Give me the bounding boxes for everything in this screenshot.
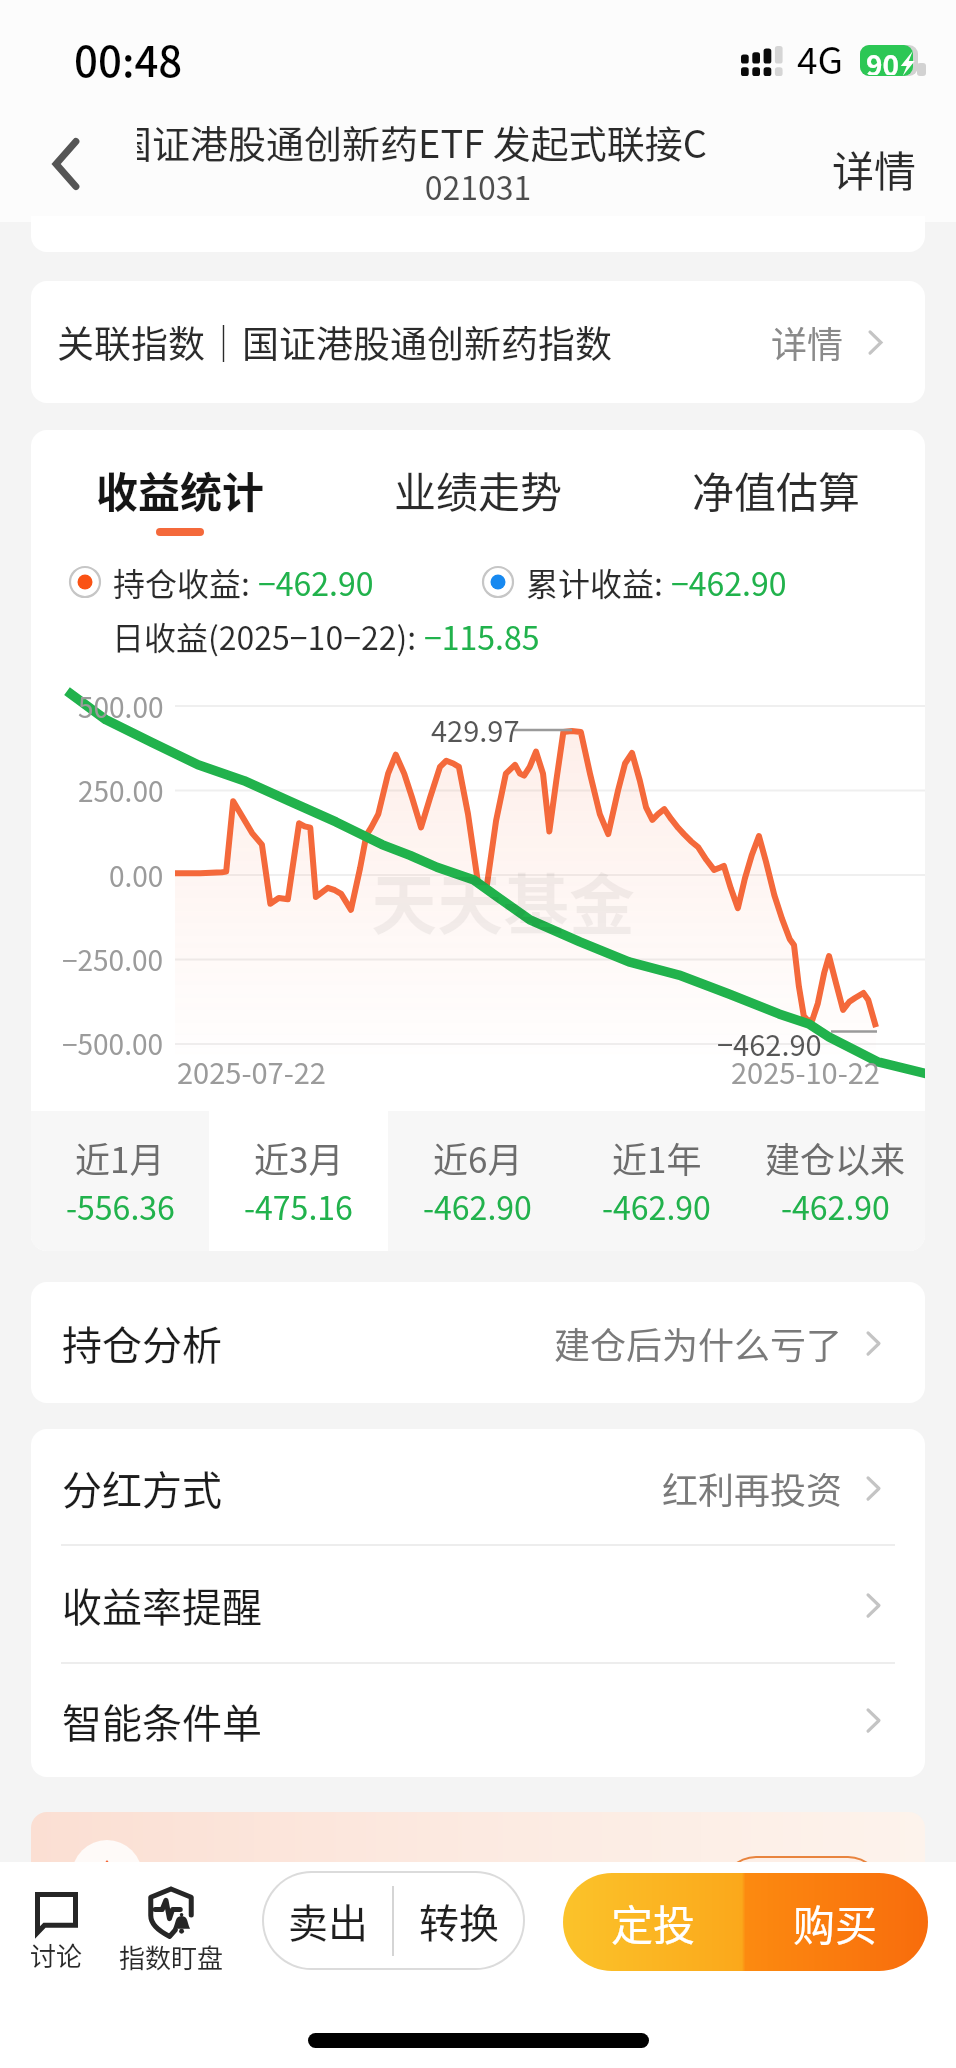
staticText: 国证港股通创新药ETF 发起式联接C	[137, 118, 707, 164]
staticText: 持仓收益:	[113, 559, 258, 605]
staticText: 智能条件单	[62, 1692, 262, 1750]
staticText: -462.90	[423, 1183, 532, 1229]
button[interactable]: 卖出	[264, 1873, 392, 1968]
button[interactable]: 详情	[818, 126, 931, 211]
button[interactable]: Back	[36, 134, 96, 194]
staticText: −462.90	[671, 559, 787, 605]
button[interactable]: 业绩走势	[329, 459, 627, 528]
staticText: 近6月	[433, 1132, 523, 1183]
staticText: 购买	[793, 1892, 878, 1953]
staticText: 0.00	[109, 855, 164, 895]
staticText: 近1年	[612, 1132, 702, 1183]
staticText: 累计收益:	[526, 559, 671, 605]
button[interactable]: 收益率提醒	[31, 1546, 925, 1664]
staticText: 详情	[832, 138, 917, 199]
staticText: −500.00	[62, 1023, 164, 1063]
staticText: 近1月	[75, 1132, 165, 1183]
button[interactable]: 分红方式	[31, 1429, 925, 1546]
staticText: 250.00	[78, 770, 164, 810]
button[interactable]: 转换	[394, 1873, 523, 1968]
button[interactable]: 近3月	[209, 1111, 388, 1251]
staticText: 卖出	[288, 1892, 368, 1950]
button[interactable]	[31, 1812, 925, 1982]
staticText: 2025-10-22	[731, 1050, 880, 1092]
staticText: 红利再投资	[662, 1462, 843, 1514]
staticText: 2025-07-22	[177, 1050, 326, 1092]
staticText: 持仓分析	[62, 1314, 222, 1372]
button[interactable]: 关联指数｜国证港股通创新药指数	[31, 281, 925, 403]
staticText: 定投	[611, 1892, 696, 1953]
staticText: -475.16	[244, 1183, 353, 1229]
staticText: −115.85	[424, 613, 540, 659]
button[interactable]: 建仓以来	[746, 1111, 925, 1251]
staticText: 讨论	[30, 1936, 83, 1974]
staticText: 详情	[771, 316, 844, 368]
button[interactable]: 智能条件单	[31, 1664, 925, 1777]
staticText: 建仓以来	[765, 1132, 906, 1183]
staticText: 关联指数｜国证港股通创新药指数	[57, 315, 612, 369]
staticText: 日收益(2025−10−22):	[112, 613, 424, 659]
staticText: 转换	[419, 1892, 499, 1950]
button[interactable]: 购买	[743, 1873, 928, 1971]
staticText: -462.90	[602, 1183, 711, 1229]
staticText: 指数盯盘	[119, 1938, 224, 1976]
staticText: −250.00	[62, 939, 164, 979]
button[interactable]: 指数盯盘	[112, 1887, 230, 1976]
staticText: 500.00	[78, 686, 164, 726]
button[interactable]: 持仓分析	[31, 1282, 925, 1403]
staticText: −462.90	[717, 1022, 822, 1064]
staticText: 4G	[797, 31, 844, 85]
button[interactable]: 近1年	[567, 1111, 746, 1251]
staticText: 建仓后为什么亏了	[554, 1317, 843, 1369]
button[interactable]: 近1月	[31, 1111, 209, 1251]
button[interactable]: 定投	[563, 1873, 743, 1971]
staticText: -556.36	[66, 1183, 175, 1229]
staticText: 天天基金	[371, 852, 635, 948]
staticText: 收益率提醒	[62, 1576, 262, 1634]
staticText: 90	[866, 44, 900, 75]
button[interactable]: 净值估算	[627, 459, 925, 528]
button[interactable]: 讨论	[10, 1892, 102, 1974]
button[interactable]: 收益统计	[31, 459, 329, 536]
staticText: 业绩走势	[394, 459, 563, 520]
staticText: −462.90	[258, 559, 374, 605]
staticText: -462.90	[781, 1183, 890, 1229]
staticText: 00:48	[74, 28, 183, 89]
staticText: 021031	[0, 163, 956, 209]
staticText: 净值估算	[692, 459, 861, 520]
staticText: 近3月	[254, 1132, 344, 1183]
staticText: 收益统计	[96, 459, 265, 520]
staticText: 429.97	[431, 708, 520, 750]
staticText: 分红方式	[62, 1459, 222, 1517]
button[interactable]: 近6月	[388, 1111, 567, 1251]
